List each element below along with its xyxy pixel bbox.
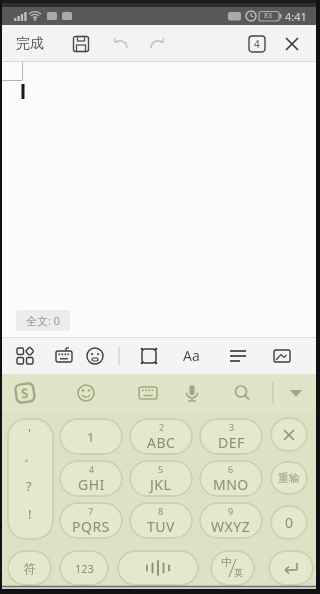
button[interactable] [268,550,314,586]
button[interactable]: 7 [59,502,123,539]
button[interactable] [225,376,259,410]
staticText: S [20,383,30,402]
button[interactable]: 4 [249,36,265,52]
button[interactable]: 全文: 0 [16,310,70,331]
button[interactable] [142,29,172,59]
button[interactable]: 完成 [10,25,50,62]
button[interactable] [223,340,253,370]
staticText: ABC [147,433,176,452]
staticText: 英 [234,567,243,578]
button[interactable] [117,550,199,586]
button[interactable]: 4 [59,460,123,497]
button[interactable]: 重输 [270,461,308,495]
button[interactable] [106,29,136,59]
staticText: 中 [221,555,232,569]
staticText: 4:41 [285,9,307,24]
button[interactable]: 6 [199,460,263,497]
staticText: 9 [228,505,234,517]
staticText: 123 [75,561,94,576]
staticText: 83 [264,11,273,21]
staticText: ' [28,424,31,442]
staticText: ? [26,477,32,495]
staticText: 5 [158,463,164,475]
button[interactable]: 123 [59,550,109,586]
staticText: 符 [24,561,36,576]
button[interactable] [131,376,165,410]
button[interactable]: Aa [178,337,204,374]
button[interactable] [69,376,103,410]
button[interactable] [80,340,110,370]
staticText: DEF [218,433,245,452]
staticText: JKL [150,475,172,494]
staticText: 全文: 0 [26,313,61,328]
staticText: PQRS [72,517,110,536]
button[interactable] [10,340,40,370]
button[interactable]: 9 [199,502,263,539]
staticText: 6 [228,463,234,475]
button[interactable] [134,340,164,370]
button[interactable] [66,29,96,59]
staticText: GHI [78,475,105,494]
button[interactable]: 1 [59,418,123,455]
staticText: 重输 [278,471,300,485]
button[interactable]: S [8,376,42,410]
staticText: 7 [88,505,94,517]
button[interactable] [49,340,79,370]
button[interactable] [267,340,297,370]
button[interactable]: 2 [129,418,193,455]
button[interactable]: 5 [129,460,193,497]
button[interactable] [279,376,313,410]
button[interactable]: 3 [199,418,263,455]
button[interactable]: ' [7,418,54,540]
staticText: MNO [213,475,249,494]
staticText: 3 [229,421,235,433]
staticText: 。 [24,449,36,464]
staticText: WXYZ [211,517,251,536]
button[interactable] [270,417,308,452]
staticText: 2 [159,421,165,433]
button[interactable]: 8 [129,502,193,539]
button[interactable] [277,29,307,59]
button[interactable]: 0 [270,505,308,540]
staticText: 完成 [16,35,44,53]
staticText: ! [28,505,32,523]
staticText: 4 [89,463,95,475]
button[interactable]: 中 [210,550,255,586]
button[interactable] [175,376,209,410]
staticText: 4 [254,37,260,51]
button[interactable]: 符 [7,550,52,586]
staticText: 1 [87,428,95,446]
staticText: Aa [183,346,200,365]
staticText: 0 [285,513,294,532]
staticText: 8 [158,505,164,517]
staticText: TUV [147,517,175,536]
